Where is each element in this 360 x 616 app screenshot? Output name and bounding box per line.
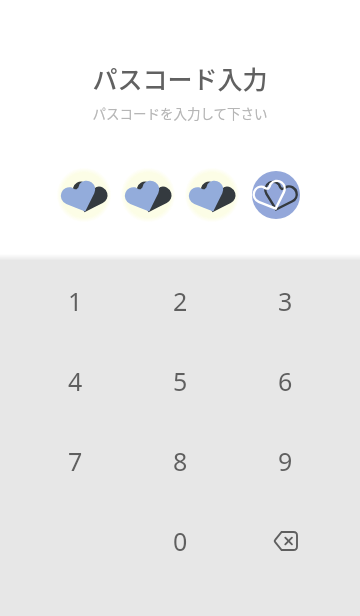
button[interactable]: 2 [128,261,233,341]
button[interactable]: Backspace [233,501,338,581]
staticText: 7 [68,444,83,478]
staticText: パスコード入力 [92,60,268,96]
button[interactable]: 1 [22,261,128,341]
staticText: 8 [173,444,188,478]
button[interactable]: 9 [233,421,338,501]
staticText: 9 [278,444,293,478]
staticText: 6 [278,364,293,398]
button[interactable]: 4 [22,341,128,421]
button[interactable]: 3 [233,261,338,341]
button[interactable]: 5 [128,341,233,421]
staticText: パスコードを入力して下さい [92,103,268,123]
staticText: 4 [68,364,83,398]
staticText: 5 [173,364,188,398]
button[interactable]: 6 [233,341,338,421]
button[interactable]: 7 [22,421,128,501]
staticText: 0 [173,524,188,558]
button[interactable]: 8 [128,421,233,501]
staticText: 1 [68,284,83,318]
staticText: 2 [173,284,188,318]
button[interactable]: 0 [128,501,233,581]
staticText: 3 [278,284,293,318]
